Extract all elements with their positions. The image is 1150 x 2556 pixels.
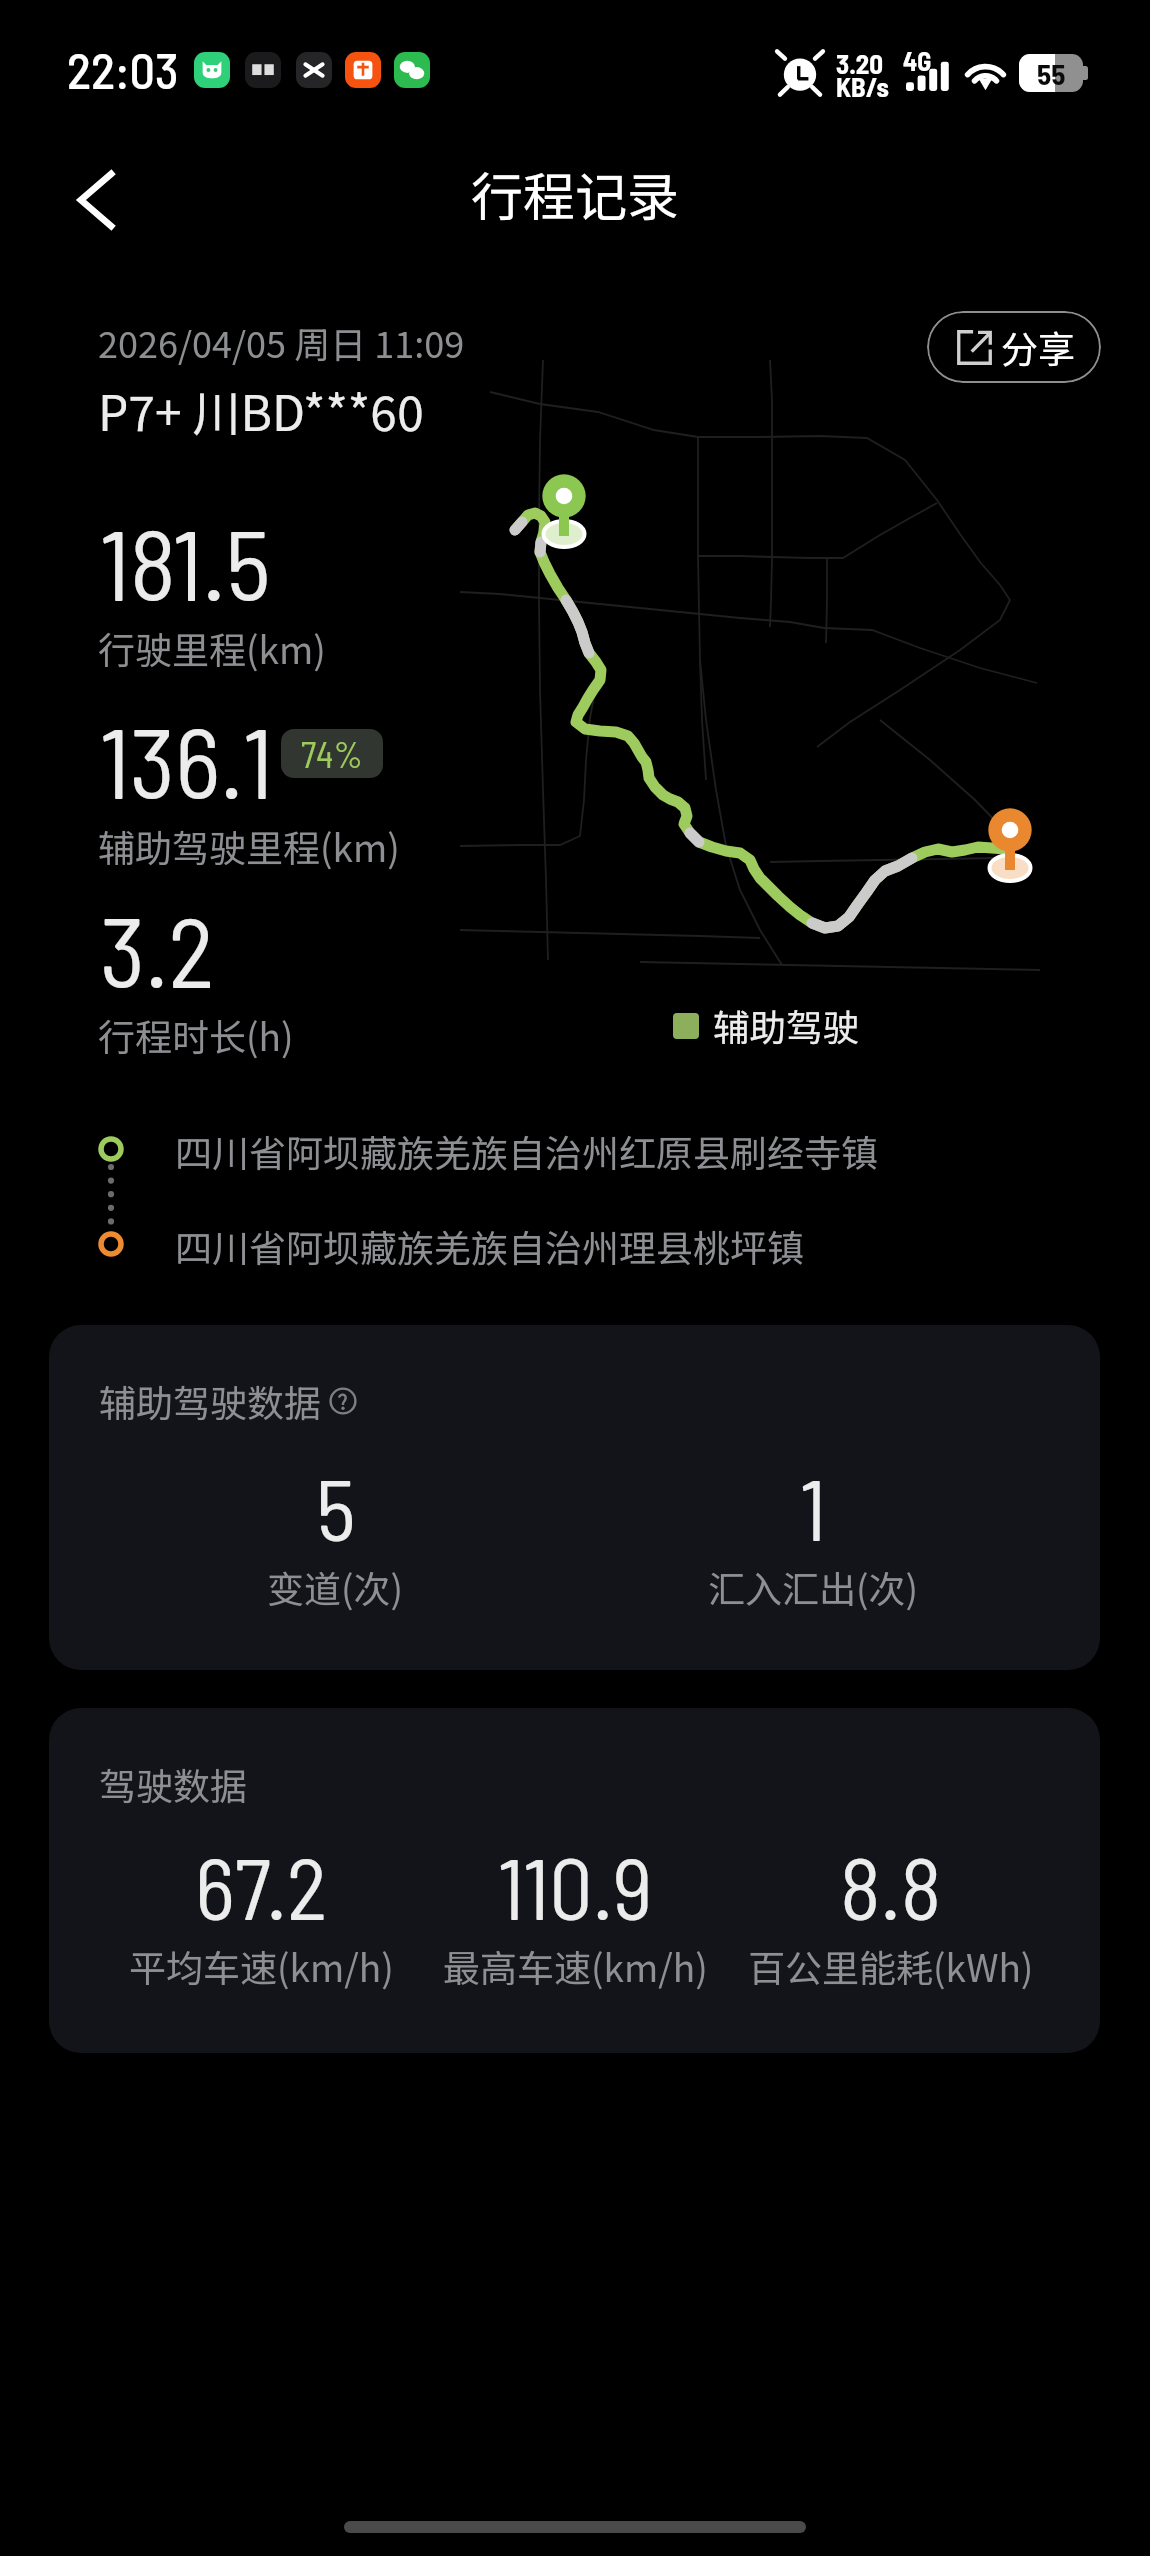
staticText: 55 [1037, 56, 1066, 91]
button[interactable]: 辅助驾驶数据 [49, 1325, 1100, 1670]
staticText: 驾驶数据 [99, 1757, 247, 1811]
staticText: 110.9 [498, 1834, 653, 1937]
staticText: 辅助驾驶里程(km) [98, 819, 400, 873]
staticText: 3.2 [100, 890, 215, 1008]
button[interactable]: 分享 [927, 311, 1101, 383]
staticText: 67.2 [195, 1834, 328, 1937]
button[interactable]: Back [46, 150, 146, 250]
staticText: 行驶里程(km) [98, 621, 326, 675]
button[interactable]: 驾驶数据 [49, 1708, 1100, 2053]
staticText: 汇入汇出(次) [708, 1560, 919, 1614]
staticText: 181.5 [100, 503, 271, 621]
staticText: 平均车速(km/h) [129, 1939, 394, 1993]
staticText: 4G [903, 45, 932, 76]
staticText: 5 [316, 1455, 356, 1558]
staticText: P7+ 川BD***60 [98, 375, 424, 445]
staticText: 最高车速(km/h) [443, 1939, 708, 1993]
staticText: 变道(次) [267, 1560, 404, 1614]
staticText: 分享 [1001, 320, 1075, 374]
staticText: 136.1 [100, 701, 273, 819]
staticText: 2026/04/05 周日 11:09 [98, 316, 465, 368]
staticText: 行程时长(h) [98, 1008, 294, 1062]
staticText: 四川省阿坝藏族羌族自治州理县桃坪镇 [175, 1219, 804, 1273]
staticText: KB/s [836, 70, 889, 102]
staticText: 四川省阿坝藏族羌族自治州红原县刷经寺镇 [175, 1124, 878, 1178]
staticText: 74% [301, 732, 363, 775]
staticText: 8.8 [840, 1834, 942, 1937]
staticText: 3.20 [836, 47, 884, 79]
staticText: 1 [800, 1455, 827, 1558]
staticText: 百公里能耗(kWh) [748, 1939, 1034, 1993]
staticText: 行程记录 [471, 156, 680, 231]
staticText: 22:03 [67, 39, 179, 99]
staticText: 辅助驾驶数据 [99, 1374, 321, 1428]
staticText: 辅助驾驶 [713, 999, 859, 1052]
